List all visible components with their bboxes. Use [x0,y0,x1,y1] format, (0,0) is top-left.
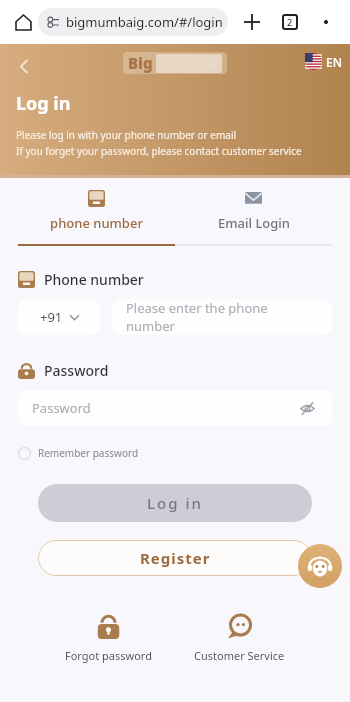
button[interactable]: Password [18,390,332,426]
button[interactable]: bigmumbaig.com/#/login [38,8,228,36]
staticText: Please enter the phone number [126,299,318,335]
button[interactable]: Please enter the phone number [112,299,332,335]
button[interactable]: Back [8,50,40,82]
staticText: Forgot password [65,648,152,663]
staticText: Log in [147,493,203,513]
staticText: 2 [287,16,293,28]
staticText: +91 [40,308,63,326]
button[interactable]: Customer support chat [298,544,342,588]
button[interactable]: EN [305,53,342,70]
button[interactable]: Email Login [175,184,332,244]
staticText: Password [32,399,91,417]
button[interactable]: +91 [18,299,100,335]
button[interactable]: Customer Service [186,606,293,671]
staticText: Log in [16,91,71,116]
staticText: Register [140,548,211,568]
button[interactable]: Forgot password [57,606,160,671]
button[interactable]: phone number [18,184,175,244]
button[interactable]: Home [10,9,36,35]
button[interactable]: Show password [296,397,318,419]
staticText: If you forget your password, please cont… [16,144,302,158]
staticText: Password [44,361,109,380]
staticText: bigmumbaig.com/#/login [66,13,223,31]
staticText: Email Login [218,214,290,232]
button[interactable]: Big [123,52,227,74]
button[interactable]: Log in [38,484,312,522]
staticText: Please log in with your phone number or … [16,128,237,142]
staticText: Remember password [38,446,139,460]
staticText: Big [128,53,153,73]
staticText: phone number [50,214,143,232]
button[interactable]: Remember password [18,442,139,464]
button[interactable]: New tab [238,8,266,36]
button[interactable]: Register [38,540,312,576]
button[interactable]: More options [312,8,340,36]
staticText: EN [326,54,342,70]
button[interactable]: Tabs [276,8,304,36]
staticText: Customer Service [194,648,285,663]
staticText: Phone number [44,270,144,289]
